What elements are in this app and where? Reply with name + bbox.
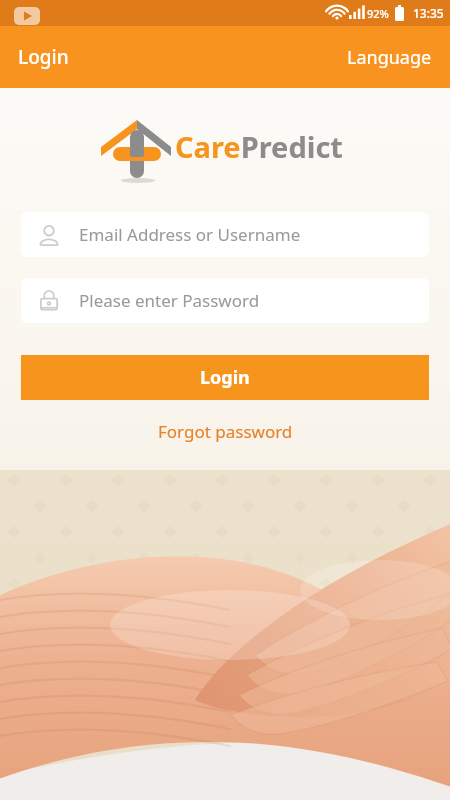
staticText: Email Address or Username xyxy=(79,223,301,246)
button[interactable]: Login xyxy=(21,355,429,400)
staticText: Login xyxy=(200,365,250,390)
button[interactable]: Forgot password xyxy=(144,414,307,449)
button[interactable]: Please enter Password xyxy=(21,278,429,323)
staticText: 13:35 xyxy=(413,5,444,21)
button[interactable]: Login xyxy=(0,32,87,82)
staticText: Language xyxy=(347,45,432,70)
staticText: 92% xyxy=(367,6,389,21)
staticText: CarePredict xyxy=(175,127,343,166)
button[interactable]: Language xyxy=(329,33,450,82)
button[interactable]: Email Address or Username xyxy=(21,212,429,257)
staticText: Login xyxy=(18,44,69,70)
staticText: Forgot password xyxy=(158,420,293,443)
staticText: Please enter Password xyxy=(79,289,260,312)
